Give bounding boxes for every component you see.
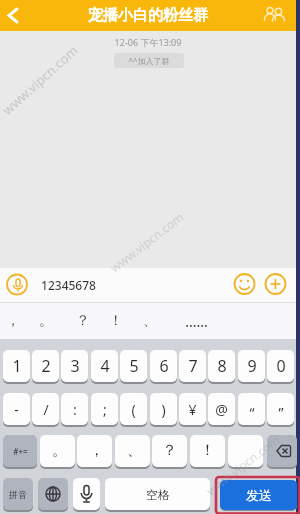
button[interactable]: 5 [120, 350, 147, 382]
staticText: / [43, 400, 49, 419]
staticText: ！ [200, 441, 215, 460]
staticText: - [14, 400, 19, 419]
staticText: “ [249, 403, 255, 422]
button[interactable]: #+= [3, 435, 37, 467]
staticText: 拼音 [9, 489, 27, 500]
button[interactable]: ) [150, 393, 177, 425]
staticText: ¥ [188, 400, 197, 419]
button[interactable]: / [32, 393, 59, 425]
button[interactable]: @ [208, 393, 235, 425]
button[interactable]: 3 [61, 350, 88, 382]
button[interactable]: ？ [152, 435, 187, 467]
staticText: ？ [76, 312, 90, 330]
staticText: : [73, 400, 77, 419]
staticText: 6 [159, 355, 169, 377]
button[interactable]: ” [267, 393, 294, 425]
staticText: ; [103, 400, 107, 419]
staticText: 3 [70, 355, 80, 377]
button[interactable]: ！ [190, 435, 225, 467]
staticText: 、 [143, 312, 157, 330]
button[interactable]: ¥ [179, 393, 206, 425]
button[interactable]: 4 [91, 350, 118, 382]
button[interactable]: 1 [3, 350, 30, 382]
staticText: 、 [127, 441, 142, 460]
staticText: www.vipcn.com [106, 208, 186, 276]
staticText: ( [131, 400, 136, 419]
button[interactable]: 8 [208, 350, 235, 382]
staticText: 12-06 下午13:09 [0, 36, 296, 48]
button[interactable]: ( [120, 393, 147, 425]
staticText: ， [6, 312, 20, 330]
button[interactable]: 。 [40, 435, 75, 467]
button[interactable]: 0 [267, 350, 294, 382]
button[interactable] [73, 478, 100, 510]
button[interactable] [0, 268, 296, 302]
staticText: ！ [109, 312, 123, 330]
staticText: 发送 [246, 487, 272, 503]
staticText: 4 [100, 355, 110, 377]
staticText: 宠播小白的粉丝群 [0, 6, 296, 25]
staticText: ？ [162, 441, 177, 460]
button[interactable]: ; [91, 393, 118, 425]
staticText: ) [161, 400, 166, 419]
staticText: 9 [247, 355, 257, 377]
button[interactable]: 空格 [105, 478, 210, 510]
button[interactable]: 9 [238, 350, 265, 382]
button[interactable]: 6 [150, 350, 177, 382]
button[interactable] [267, 435, 297, 467]
button[interactable]: ！ [107, 305, 125, 337]
staticText: www.vipcn.com [0, 41, 82, 119]
button[interactable] [38, 478, 68, 510]
staticText: 0 [276, 355, 286, 377]
staticText: www.vipcn.com [202, 431, 282, 499]
staticText [244, 440, 248, 460]
button[interactable]: 、 [115, 435, 150, 467]
staticText: 5 [129, 355, 139, 377]
button[interactable]: ， [77, 435, 112, 467]
staticText: 。 [39, 312, 53, 330]
staticText: @ [215, 400, 228, 419]
button[interactable]: 、 [141, 305, 159, 337]
button[interactable]: ， [4, 305, 22, 337]
button[interactable] [228, 435, 263, 467]
button[interactable]: : [61, 393, 88, 425]
staticText: 。 [52, 441, 67, 460]
staticText: ^^加入了群 [128, 55, 170, 66]
staticText: 7 [188, 355, 198, 377]
staticText: ” [278, 403, 284, 422]
button[interactable]: 。 [37, 305, 55, 337]
button[interactable]: 发送 [220, 480, 297, 510]
button[interactable]: “ [238, 393, 265, 425]
staticText: 12345678 [41, 277, 96, 293]
staticText: 空格 [146, 487, 170, 502]
button[interactable]: 7 [179, 350, 206, 382]
staticText: …… [185, 312, 208, 331]
button[interactable]: ？ [74, 305, 92, 337]
staticText: 1 [12, 355, 22, 377]
button[interactable]: 2 [32, 350, 59, 382]
staticText: 8 [217, 355, 227, 377]
button[interactable]: …… [176, 305, 216, 337]
staticText: ， [89, 441, 104, 460]
button[interactable]: - [3, 393, 30, 425]
button[interactable]: 拼音 [3, 478, 33, 510]
staticText: 2 [41, 355, 51, 377]
staticText: #+= [13, 446, 28, 457]
